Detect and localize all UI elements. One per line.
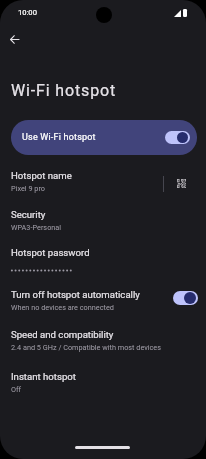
staticText: Off [11,385,22,394]
button[interactable]: Hotspot name [0,165,206,204]
button[interactable]: Share hotspot QR code [170,172,192,194]
staticText: 2.4 and 5 GHz / Compatible with most dev… [11,343,161,352]
staticText: Speed and compatibility [11,329,114,340]
staticText: Hotspot password [11,247,90,258]
button[interactable]: Security [0,204,206,242]
button[interactable]: Use Wi-Fi hotspot [165,131,190,144]
staticText: Turn off hotspot automatically [11,289,140,300]
staticText: Wi-Fi hotspot [11,81,117,100]
staticText: WPA3-Personal [11,223,62,232]
staticText: Use Wi-Fi hotspot [22,132,165,143]
staticText: Hotspot name [11,170,72,181]
button[interactable]: Turn off hotspot automatically [173,291,198,305]
staticText: Pixel 9 pro [11,184,45,193]
button[interactable]: Turn off hotspot automatically [0,284,206,324]
staticText: 10:00 [18,8,37,17]
staticText: Instant hotspot [11,371,76,382]
button[interactable]: Instant hotspot [0,366,206,406]
button[interactable]: Use Wi-Fi hotspot [11,120,197,155]
staticText: When no devices are connected [11,303,114,312]
button[interactable]: Back [1,26,27,52]
staticText: Security [11,209,46,220]
button[interactable]: Speed and compatibility [0,324,206,366]
button[interactable]: Hotspot password [0,242,206,284]
